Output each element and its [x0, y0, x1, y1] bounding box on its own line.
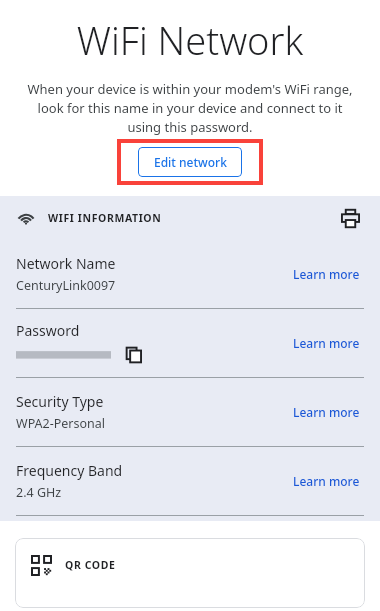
staticText: WiFi Network: [0, 14, 380, 66]
staticText: Learn more: [293, 335, 360, 351]
staticText: Edit network: [154, 154, 227, 170]
button[interactable]: Learn more: [289, 331, 364, 355]
staticText: Learn more: [293, 473, 360, 489]
button[interactable]: Learn more: [289, 262, 364, 286]
button[interactable]: Edit network: [138, 147, 242, 177]
staticText: WIFI INFORMATION: [48, 211, 162, 225]
staticText: Frequency Band: [16, 461, 123, 480]
staticText: Network Name: [16, 254, 116, 273]
staticText: Learn more: [293, 404, 360, 420]
staticText: Learn more: [293, 266, 360, 282]
staticText: 2.4 GHz: [16, 484, 62, 501]
staticText: Security Type: [16, 392, 104, 411]
button[interactable]: Copy password: [123, 344, 145, 366]
button[interactable]: Print: [336, 204, 364, 232]
staticText: Password: [16, 321, 80, 340]
button[interactable]: QR CODE: [15, 538, 365, 608]
staticText: QR CODE: [65, 558, 116, 572]
staticText: CenturyLink0097: [16, 277, 116, 294]
button[interactable]: Learn more: [289, 469, 364, 493]
staticText: WPA2-Personal: [16, 415, 106, 432]
button[interactable]: Learn more: [289, 400, 364, 424]
staticText: When your device is within your modem's …: [16, 80, 364, 136]
